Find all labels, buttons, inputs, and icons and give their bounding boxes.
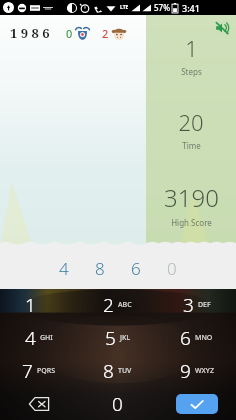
staticText: JKL [120,333,131,343]
button[interactable]: Toggle sound [215,21,229,35]
staticText: 0 [167,257,177,280]
staticText: 0 [66,26,73,41]
staticText: PQRS [37,366,56,376]
button[interactable]: 7 [0,354,78,387]
button[interactable]: 8 [78,354,157,387]
staticText: 6 [131,257,141,280]
staticText: 2 [103,292,114,318]
staticText: 1 9 8 6 [10,24,50,42]
button[interactable]: 3 [157,289,236,321]
button[interactable]: Backspace [0,387,78,420]
staticText: Steps [181,66,202,77]
button[interactable]: 0 [78,387,157,420]
staticText: High Score [171,217,212,228]
staticText: DEF [198,300,211,310]
staticText: 6 [180,325,191,351]
staticText: 7 [22,358,33,384]
button[interactable]: 8 [85,253,115,283]
button[interactable]: 6 [121,253,151,283]
staticText: WXYZ [195,366,214,376]
staticText: 57% [154,2,170,13]
button[interactable]: Submit guess [176,394,218,414]
staticText: LTE [120,4,129,11]
staticText: 8 [95,257,105,280]
button[interactable]: 5 [78,321,157,354]
button[interactable]: 0 [157,253,187,283]
staticText: GHI [40,333,53,343]
staticText: MNO [195,333,213,343]
staticText: TUV [118,366,132,376]
staticText: 20 [178,107,204,137]
button[interactable]: 6 [157,321,236,354]
button[interactable]: 1 [0,289,78,321]
button[interactable]: 2 [78,289,157,321]
button[interactable]: 9 [157,354,236,387]
staticText: 9 [180,358,191,384]
staticText: Time [182,140,201,151]
staticText: 5 [105,325,116,351]
staticText: 4 [59,257,69,280]
staticText: ABC [118,300,132,310]
staticText: 8 [103,358,114,384]
staticText: 1 [25,292,36,318]
button[interactable]: 4 [49,253,79,283]
staticText: 3190 [164,181,219,214]
staticText: 0 [112,391,123,417]
staticText: 4 [25,325,36,351]
button[interactable]: 4 [0,321,78,354]
staticText: 2 [102,26,109,41]
staticText: 3 [183,292,194,318]
staticText: 3:41 [182,2,200,14]
staticText: 1 [185,33,198,63]
